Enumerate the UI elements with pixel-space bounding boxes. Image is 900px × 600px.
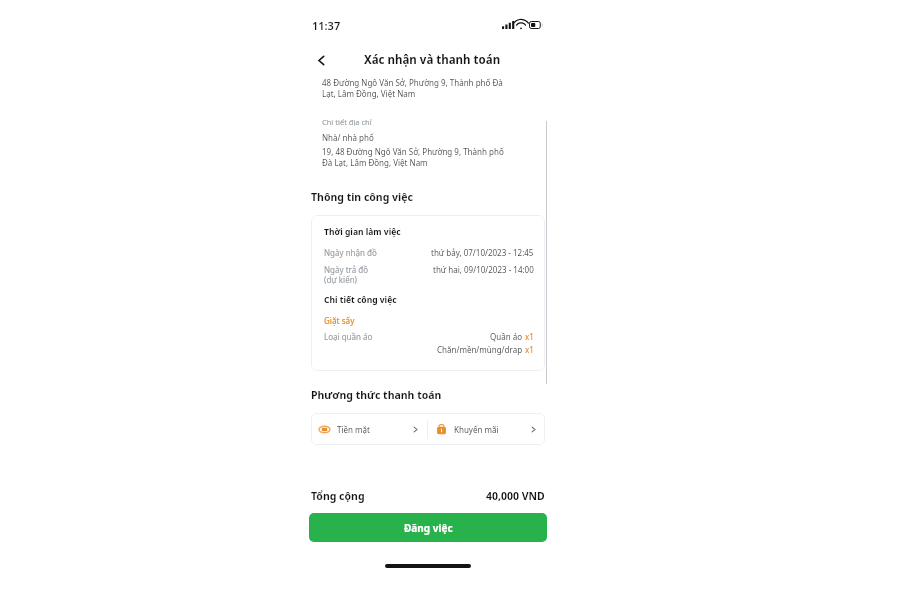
staticText: Tổng cộng (311, 489, 486, 503)
staticText: x1 (525, 331, 534, 342)
button[interactable]: 48 Đường Ngô Văn Sở, Phường 9, Thành phố… (311, 75, 545, 173)
staticText: 40,000 VND (486, 489, 545, 503)
staticText: Khuyến mãi (454, 424, 499, 435)
staticText: 48 Đường Ngô Văn Sở, Phường 9, Thành phố… (322, 77, 503, 99)
staticText: x1 (525, 344, 534, 355)
button[interactable]: Tiền mặt (311, 413, 427, 445)
staticText: thứ hai, 09/10/2023 - 14:00 (433, 264, 534, 275)
staticText: Quần áo (490, 331, 525, 342)
staticText: Ngày nhận đồ (324, 247, 431, 258)
staticText: Giặt sấy (324, 315, 355, 326)
staticText: Thời gian làm việc (324, 226, 401, 238)
staticText: Nhà/ nhà phố (322, 132, 374, 143)
staticText: Tiền mặt (337, 424, 370, 435)
staticText: Chăn/mền/mùng/drap (437, 344, 525, 355)
staticText: Chi tiết địa chỉ (322, 117, 372, 127)
button[interactable]: Thời gian làm việc (311, 215, 545, 371)
button[interactable]: Đăng việc (309, 513, 547, 542)
button[interactable]: Back (309, 48, 333, 72)
staticText: Chi tiết công việc (324, 294, 397, 306)
staticText: thứ bảy, 07/10/2023 - 12:45 (431, 247, 534, 258)
staticText: 19, 48 Đường Ngô Văn Sở, Phường 9, Thành… (322, 146, 504, 168)
staticText: Đăng việc (404, 521, 453, 535)
staticText: Xác nhận và thanh toán (364, 52, 501, 68)
button[interactable]: Khuyến mãi (428, 413, 545, 445)
staticText: Phương thức thanh toán (311, 388, 442, 402)
staticText: Loại quần áo (324, 331, 437, 342)
staticText: Ngày trả đồ (dự kiến) (324, 264, 433, 286)
staticText: Thông tin công việc (311, 190, 413, 204)
staticText: 11:37 (312, 18, 341, 33)
